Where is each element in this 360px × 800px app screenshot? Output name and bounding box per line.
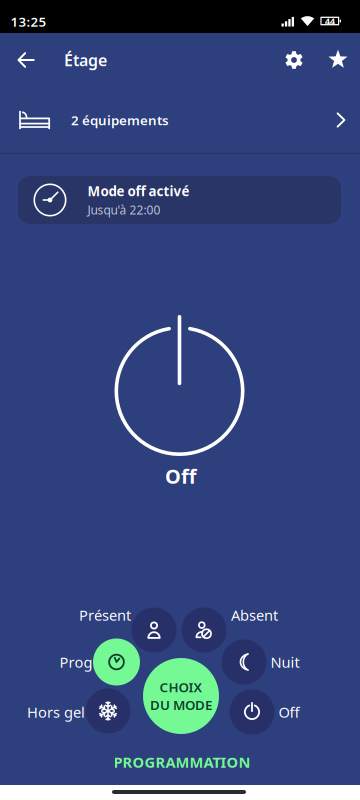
button[interactable]: CHOIX [143,658,219,734]
staticText: Étage [64,49,107,71]
staticText: DU MODE [150,696,212,714]
staticText: Prog [59,652,92,672]
button[interactable]: 2 équipements [0,86,360,154]
staticText: Off [278,702,299,722]
staticText: 13:25 [10,13,46,30]
staticText: PROGRAMMATION [113,752,250,772]
staticText: Off [165,463,196,489]
button[interactable]: Présent [131,607,176,652]
staticText: 2 équipements [71,111,169,129]
staticText: CHOIX [159,678,202,696]
button[interactable]: Nuit [221,639,266,684]
button[interactable]: Off [229,689,274,734]
staticText: 44 [325,15,335,27]
button[interactable]: Mode off activé [18,176,341,224]
staticText: Jusqu'à 22:00 [87,202,160,218]
staticText: Mode off activé [87,182,189,200]
button[interactable]: Absent [181,607,226,652]
staticText: Nuit [270,652,299,672]
button[interactable]: Power, Off [103,308,255,463]
button[interactable]: Prog [93,638,140,685]
button[interactable]: PROGRAMMATION [82,745,282,779]
staticText: Hors gel [27,702,85,722]
button[interactable]: Favourite [317,38,359,80]
button[interactable]: Back [3,37,49,83]
staticText: Absent [231,605,278,625]
button[interactable]: Hors gel [85,688,130,733]
button[interactable]: Settings [273,39,315,81]
staticText: Présent [79,605,131,625]
